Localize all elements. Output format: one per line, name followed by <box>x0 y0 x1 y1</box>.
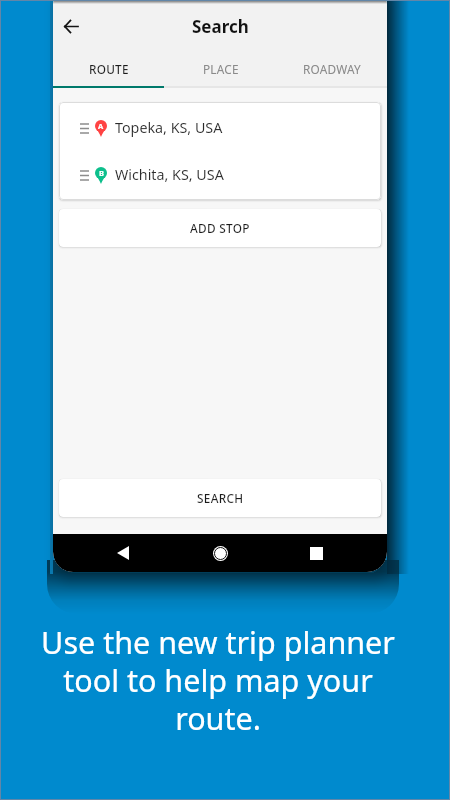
staticText: PLACE <box>203 61 239 77</box>
staticText: ROUTE <box>89 61 129 77</box>
button[interactable]: Recents <box>298 535 334 571</box>
staticText: Topeka, KS, USA <box>115 118 223 137</box>
staticText: ADD STOP <box>190 220 250 236</box>
button[interactable]: B <box>59 149 381 196</box>
staticText: Use the new trip planner tool to help ma… <box>33 621 403 739</box>
button[interactable]: A <box>59 102 381 149</box>
staticText: Wichita, KS, USA <box>115 165 224 184</box>
staticText: A <box>98 121 104 131</box>
button[interactable]: Back <box>53 8 89 44</box>
button[interactable]: Back <box>105 535 141 571</box>
staticText: B <box>99 168 104 178</box>
staticText: ROADWAY <box>303 61 361 77</box>
button[interactable]: ROUTE <box>53 52 165 86</box>
button[interactable]: SEARCH <box>59 479 381 517</box>
button[interactable]: Home <box>202 535 238 571</box>
button[interactable]: ROADWAY <box>276 52 387 86</box>
staticText: SEARCH <box>197 490 244 506</box>
button[interactable]: ADD STOP <box>59 209 381 247</box>
staticText: Search <box>192 15 249 38</box>
button[interactable]: PLACE <box>165 52 276 86</box>
